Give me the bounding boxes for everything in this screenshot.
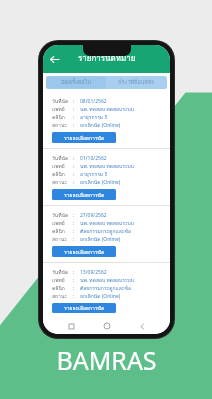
staticText: รายละเอียดการนัด (64, 134, 105, 142)
staticText: แพทย์ (52, 276, 73, 284)
staticText: ยกเลิกนัด (Online) (80, 235, 121, 243)
staticText: วันที่นัด (52, 97, 73, 105)
staticText: : (73, 155, 75, 162)
staticText: แพทย์ (52, 162, 73, 170)
staticText: BAMRAS (56, 343, 157, 377)
staticText: สถานะ (52, 235, 73, 243)
staticText: : (73, 277, 75, 284)
staticText: : (73, 171, 75, 178)
staticText: ยกเลิกนัด (Online) (80, 121, 121, 129)
button[interactable]: Back (135, 319, 149, 333)
staticText: คลินิก (52, 113, 73, 121)
staticText: สถานะ (52, 121, 73, 129)
staticText: อายุรกรรม 5 (80, 113, 108, 121)
button[interactable]: นัดครั้งต่อไป (46, 76, 106, 89)
staticText: วันที่นัด (52, 211, 73, 219)
staticText: นพ. ทดสอบ ทดสอบระบบ (80, 276, 134, 284)
staticText: นพ. ทดสอบ ทดสอบระบบ (80, 105, 134, 113)
staticText: ประวัติย้อนหลัง (118, 78, 155, 87)
staticText: รายละเอียดการนัด (64, 191, 105, 199)
staticText: วันที่นัด (52, 268, 73, 276)
staticText: สถานะ (52, 292, 73, 300)
staticText: : (73, 122, 75, 129)
staticText: รายละเอียดการนัด (64, 248, 105, 256)
staticText: : (73, 293, 75, 300)
button[interactable]: วันที่นัด (43, 263, 170, 318)
button[interactable]: รายละเอียดการนัด (52, 189, 116, 200)
staticText: 13/09/2562 (80, 269, 107, 276)
staticText: : (73, 106, 75, 113)
staticText: รายการนัดหมาย (78, 52, 136, 65)
staticText: คลินิก (52, 227, 73, 235)
staticText: : (73, 269, 75, 276)
staticText: วันที่นัด (52, 154, 73, 162)
staticText: คลินิก (52, 170, 73, 178)
button[interactable]: วันที่นัด (43, 149, 170, 205)
button[interactable]: วันที่นัด (43, 206, 170, 262)
staticText: : (73, 114, 75, 121)
button[interactable]: Back (47, 52, 61, 66)
staticText: ศัลยกรรมกระดูกและข้อ (80, 284, 131, 292)
staticText: : (73, 212, 75, 219)
staticText: นพ. ทดสอบ ทดสอบระบบ (80, 162, 134, 170)
staticText: : (73, 163, 75, 170)
button[interactable]: Home (100, 319, 114, 333)
button[interactable]: วันที่นัด (43, 92, 170, 148)
staticText: : (73, 228, 75, 235)
staticText: แพทย์ (52, 105, 73, 113)
staticText: 01/10/2562 (80, 155, 107, 162)
button[interactable]: Recents (64, 319, 78, 333)
staticText: : (73, 179, 75, 186)
staticText: ยกเลิกนัด (Online) (80, 292, 121, 300)
staticText: นัดครั้งต่อไป (61, 78, 91, 87)
staticText: รายละเอียดการนัด (64, 304, 105, 312)
staticText: 08/01/2562 (80, 98, 107, 105)
staticText: ศัลยกรรมกระดูกและข้อ (80, 227, 131, 235)
staticText: : (73, 220, 75, 227)
button[interactable]: รายละเอียดการนัด (52, 303, 116, 313)
button[interactable]: ประวัติย้อนหลัง (106, 76, 167, 89)
staticText: แพทย์ (52, 219, 73, 227)
staticText: : (73, 98, 75, 105)
staticText: คลินิก (52, 284, 73, 292)
staticText: ยกเลิกนัด (Online) (80, 178, 121, 186)
staticText: 27/09/2562 (80, 212, 107, 219)
button[interactable]: รายละเอียดการนัด (52, 132, 116, 143)
staticText: อายุรกรรม 5 (80, 170, 108, 178)
staticText: : (73, 236, 75, 243)
button[interactable]: รายละเอียดการนัด (52, 246, 116, 257)
staticText: สถานะ (52, 178, 73, 186)
staticText: : (73, 285, 75, 292)
staticText: นพ. ทดสอบ ทดสอบระบบ (80, 219, 134, 227)
